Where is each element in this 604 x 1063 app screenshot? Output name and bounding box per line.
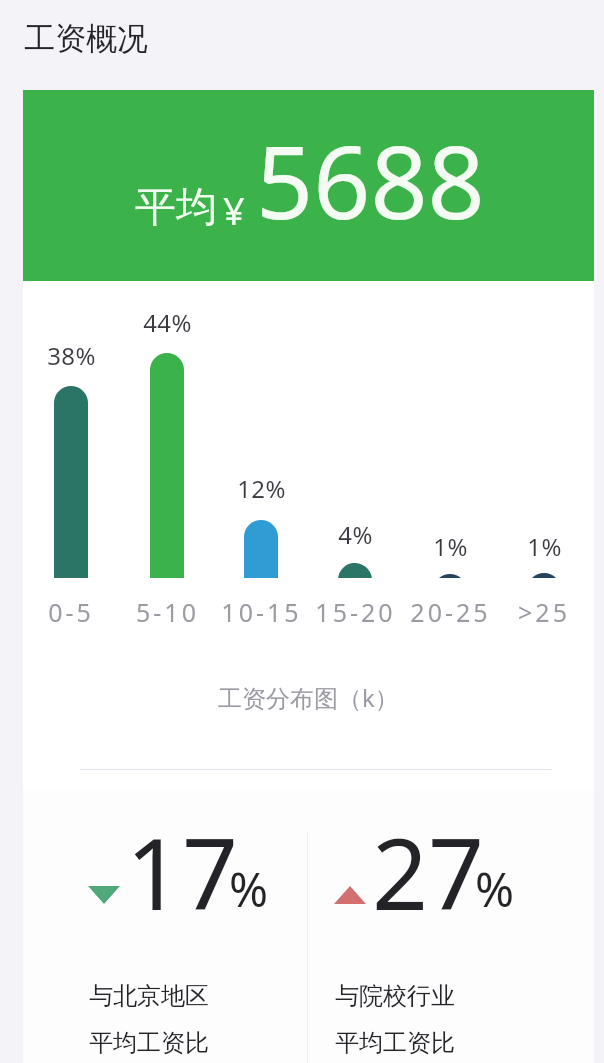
staticText: >25 bbox=[518, 595, 570, 629]
staticText: 平均工资比 bbox=[335, 1028, 455, 1058]
staticText: 12% bbox=[237, 472, 286, 505]
staticText: 与院校行业 bbox=[335, 981, 455, 1011]
staticText: % bbox=[229, 857, 269, 921]
staticText: % bbox=[475, 857, 515, 921]
staticText: 平均工资比 bbox=[89, 1028, 209, 1058]
staticText: 44% bbox=[143, 306, 192, 339]
staticText: 与北京地区 bbox=[89, 981, 209, 1011]
staticText: 工资分布图（k） bbox=[218, 681, 399, 714]
staticText: 27 bbox=[372, 805, 485, 938]
staticText: 工资概况 bbox=[24, 19, 148, 58]
button[interactable]: Higher than average bbox=[334, 820, 564, 1060]
other: Higher than average bbox=[334, 886, 366, 904]
button[interactable]: 平均 bbox=[23, 90, 594, 281]
other: Lower than average bbox=[88, 886, 120, 904]
button[interactable]: Lower than average bbox=[88, 820, 318, 1060]
staticText: 15-20 bbox=[315, 595, 396, 629]
staticText: 20-25 bbox=[410, 595, 491, 629]
staticText: ¥ bbox=[223, 184, 245, 236]
staticText: 平均 bbox=[135, 182, 217, 234]
staticText: 5-10 bbox=[136, 595, 199, 629]
staticText: 10-15 bbox=[221, 595, 302, 629]
staticText: 1% bbox=[527, 530, 562, 563]
staticText: 5688 bbox=[256, 112, 485, 248]
staticText: 0-5 bbox=[48, 595, 94, 629]
staticText: 1% bbox=[433, 530, 468, 563]
staticText: 4% bbox=[338, 518, 373, 551]
staticText: 17 bbox=[126, 805, 239, 938]
staticText: 38% bbox=[47, 339, 96, 372]
